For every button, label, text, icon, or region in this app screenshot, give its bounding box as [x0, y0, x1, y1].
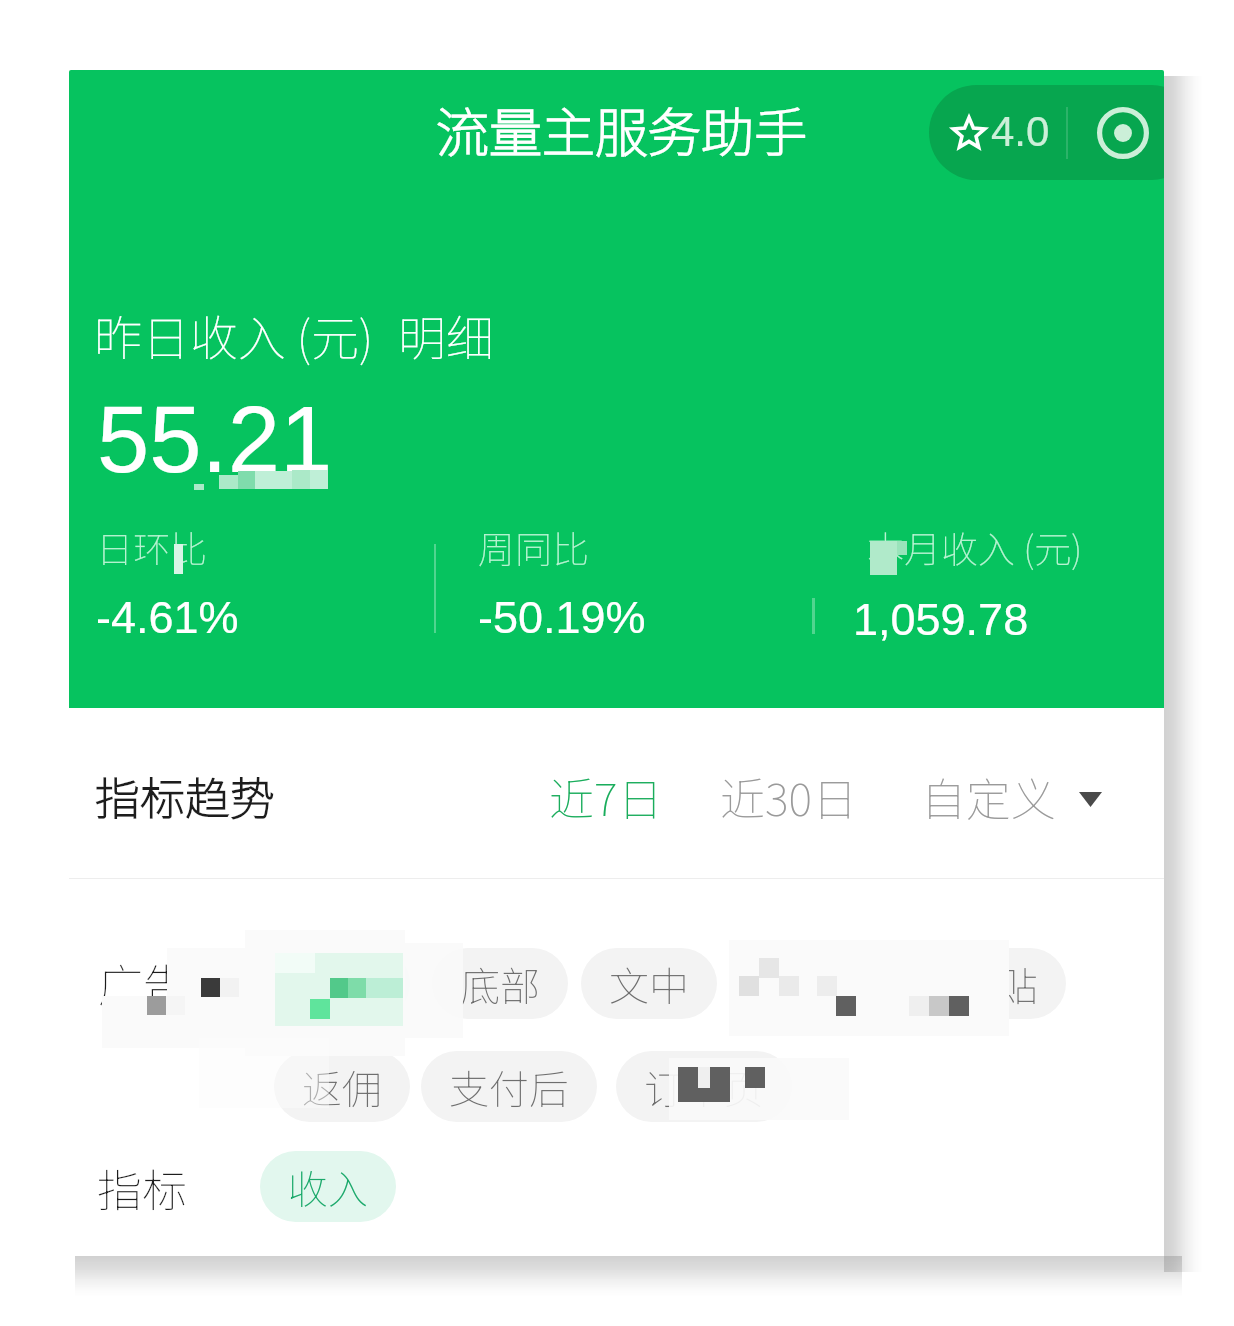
- staticText: 4.0: [991, 108, 1050, 155]
- button[interactable]: 全部: [274, 948, 410, 1019]
- staticText: 1,059.78: [853, 594, 1029, 644]
- staticText: 返佣: [302, 1058, 382, 1116]
- staticText: 55.21: [97, 387, 333, 492]
- button[interactable]: 自定义: [921, 764, 1102, 829]
- staticText: 自定义: [921, 764, 1057, 829]
- button[interactable]: 近7日: [549, 764, 663, 829]
- staticText: -50.19%: [478, 592, 646, 642]
- staticText: 指标趋势: [95, 763, 276, 828]
- staticText: 底部: [460, 955, 540, 1013]
- button[interactable]: 收入: [260, 1151, 396, 1222]
- button[interactable]: Rating 4.0: [930, 85, 1072, 180]
- button[interactable]: 近30日: [720, 764, 857, 829]
- button[interactable]: 底部: [432, 948, 568, 1019]
- staticText: 指标: [97, 1155, 188, 1220]
- button[interactable]: 明细: [398, 300, 495, 370]
- button[interactable]: 订单页: [616, 1051, 792, 1122]
- button[interactable]: 返佣: [274, 1051, 410, 1122]
- staticText: 视频贴: [918, 955, 1038, 1013]
- staticText: 本月收入 (元): [867, 520, 1083, 574]
- button[interactable]: More options: [1081, 85, 1164, 180]
- staticText: 日环比: [96, 520, 207, 574]
- staticText: 收入: [288, 1158, 368, 1216]
- staticText: 昨日收入 (元): [94, 300, 374, 370]
- button[interactable]: 支付后: [421, 1051, 597, 1122]
- staticText: 激励: [760, 955, 840, 1013]
- button[interactable]: 激励: [732, 948, 868, 1019]
- staticText: 流量主服务助手: [436, 91, 807, 168]
- staticText: 文中: [609, 955, 689, 1013]
- staticText: -4.61%: [96, 592, 239, 642]
- button[interactable]: 视频贴: [890, 948, 1066, 1019]
- staticText: 周同比: [478, 520, 589, 574]
- staticText: 全部: [302, 955, 382, 1013]
- button[interactable]: 文中: [581, 948, 717, 1019]
- staticText: 订单页: [644, 1058, 764, 1116]
- staticText: 广告位: [98, 950, 234, 1015]
- staticText: 支付后: [449, 1058, 569, 1116]
